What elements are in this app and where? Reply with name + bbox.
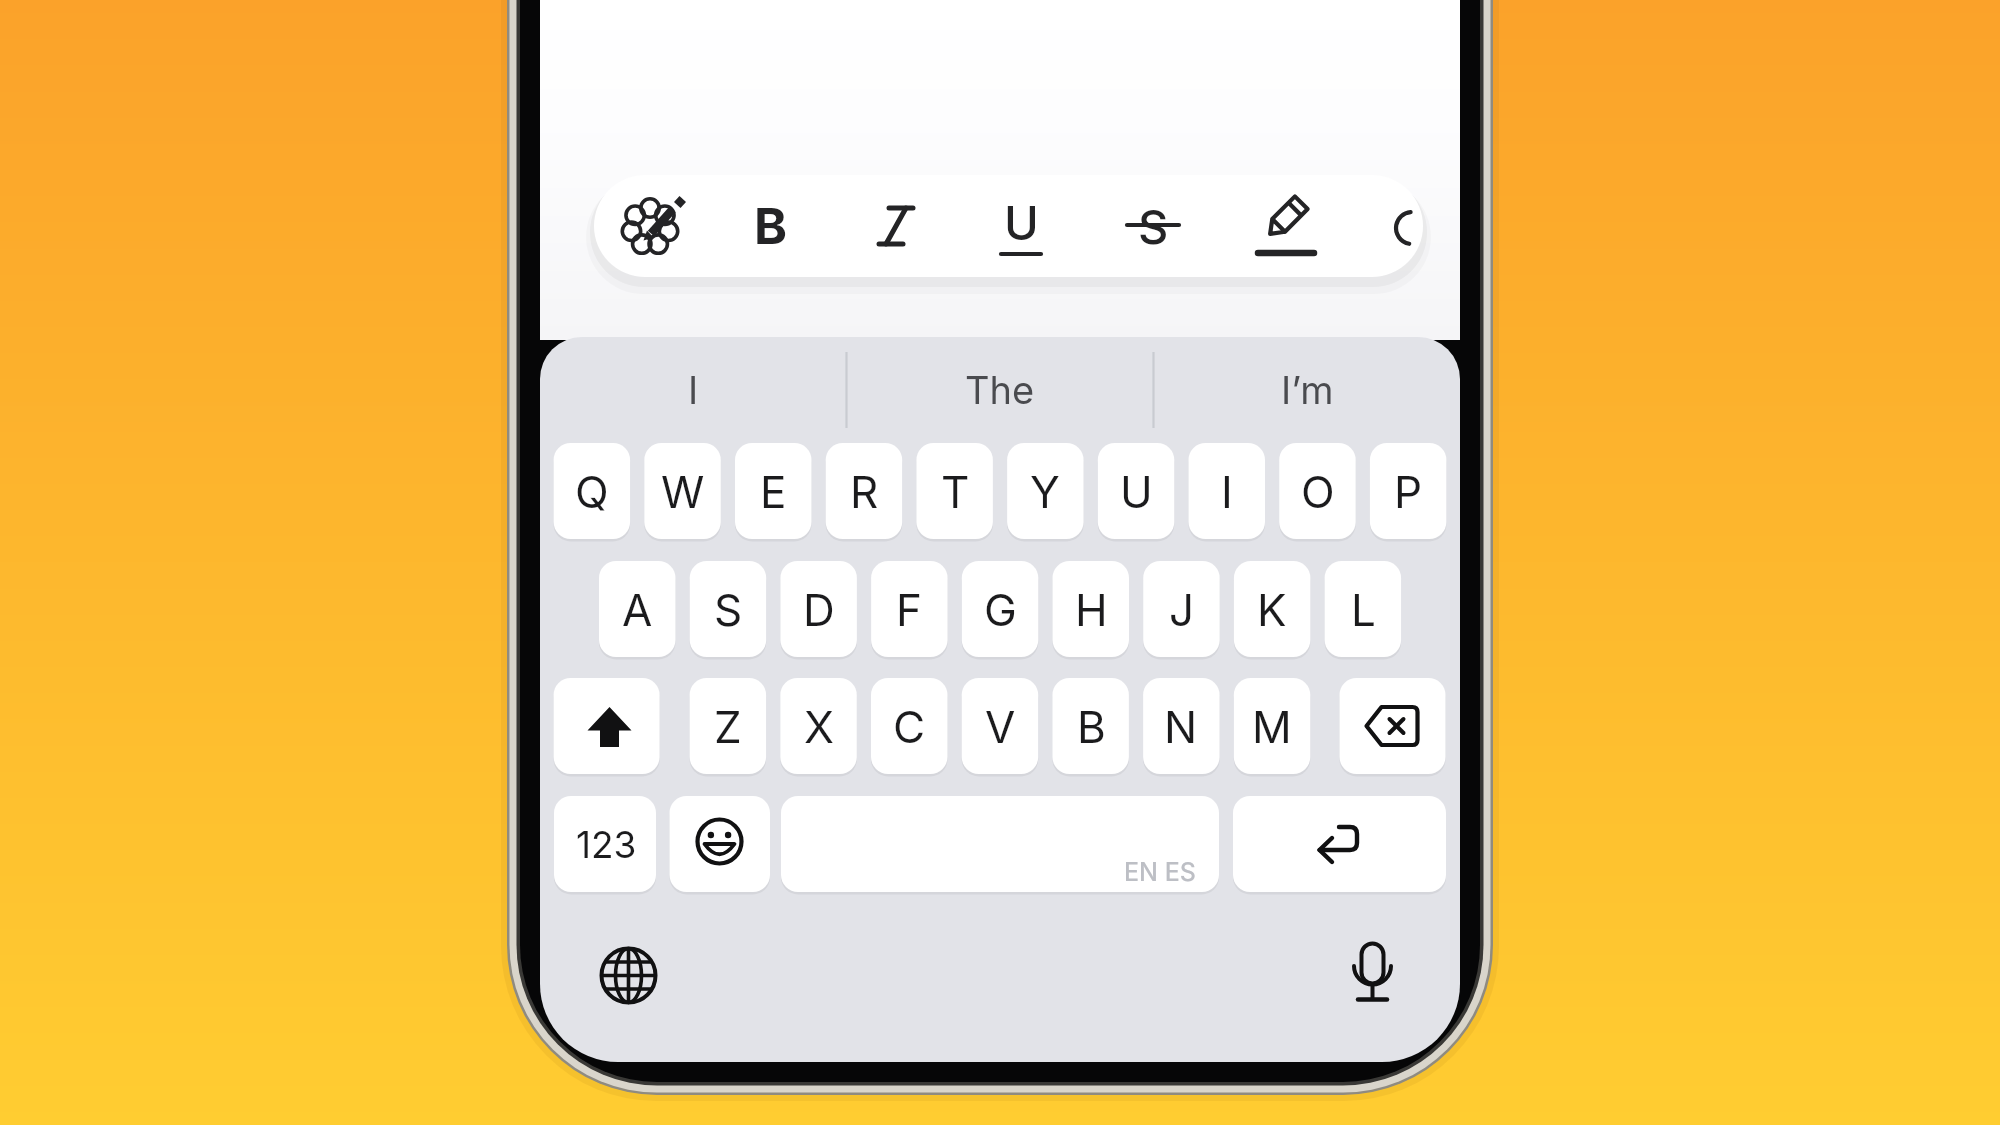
staticText: M: [1252, 700, 1292, 753]
staticText: R: [850, 465, 879, 518]
staticText: Y: [1030, 465, 1060, 518]
staticText: 123: [576, 822, 637, 867]
staticText: K: [1257, 583, 1287, 636]
staticText: S: [1138, 198, 1169, 255]
staticText: N: [1164, 700, 1198, 753]
staticText: V: [985, 700, 1016, 753]
staticText: G: [984, 583, 1017, 636]
staticText: D: [803, 583, 835, 636]
staticText: I’m: [1281, 367, 1334, 413]
staticText: L: [1351, 583, 1376, 636]
staticText: H: [1075, 583, 1108, 636]
staticText: I: [688, 367, 699, 413]
staticText: B: [1077, 700, 1106, 753]
staticText: Q: [575, 465, 609, 518]
staticText: C: [893, 700, 926, 753]
staticText: EN ES: [1124, 857, 1196, 887]
staticText: I: [1221, 465, 1233, 518]
staticText: T: [941, 465, 970, 518]
staticText: B: [754, 196, 788, 256]
staticText: F: [896, 583, 922, 636]
staticText: U: [1120, 465, 1153, 518]
staticText: X: [804, 700, 835, 753]
staticText: S: [714, 583, 743, 636]
staticText: Z: [714, 700, 742, 753]
staticText: W: [661, 465, 705, 518]
staticText: J: [1169, 583, 1195, 636]
staticText: P: [1394, 465, 1423, 518]
staticText: A: [622, 583, 653, 636]
staticText: U: [1004, 194, 1039, 251]
staticText: E: [760, 465, 787, 518]
staticText: O: [1301, 465, 1335, 518]
staticText: The: [965, 367, 1035, 413]
